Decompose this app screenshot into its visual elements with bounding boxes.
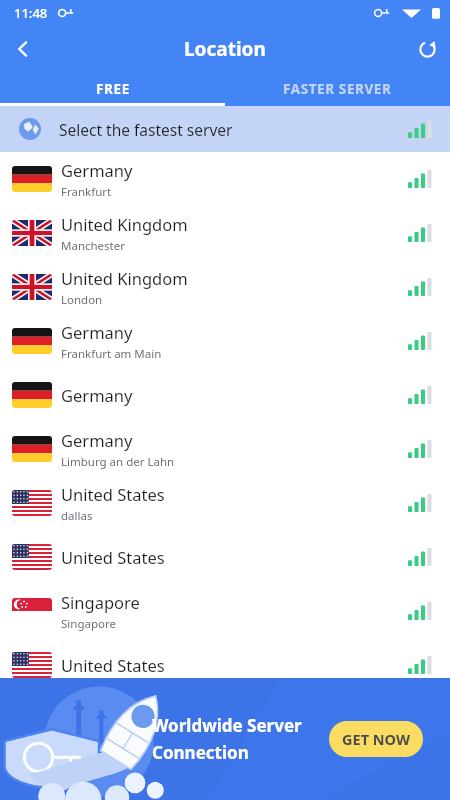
staticText: Connection: [152, 741, 249, 764]
staticText: Frankfurt am Main: [61, 346, 162, 362]
staticText: Germany: [61, 159, 133, 181]
staticText: Germany: [61, 429, 133, 451]
staticText: Singapore: [61, 591, 140, 613]
button[interactable]: Worldwide Server: [0, 678, 450, 800]
staticText: dallas: [61, 508, 93, 524]
staticText: 11:48: [14, 4, 48, 22]
staticText: FASTER SERVER: [283, 80, 392, 98]
staticText: London: [61, 292, 103, 308]
staticText: United Kingdom: [61, 213, 188, 235]
staticText: United Kingdom: [61, 267, 188, 289]
button[interactable]: GET NOW: [329, 721, 423, 757]
staticText: United States: [61, 654, 165, 676]
button[interactable]: Germany: [0, 368, 450, 422]
button[interactable]: United States: [0, 638, 450, 692]
button[interactable]: Refresh: [404, 26, 450, 72]
button[interactable]: United States: [0, 530, 450, 584]
button[interactable]: FREE: [0, 72, 225, 106]
staticText: Germany: [61, 321, 133, 343]
staticText: Select the fastest server: [59, 119, 233, 140]
button[interactable]: Select the fastest server: [0, 106, 450, 152]
staticText: Germany: [61, 384, 133, 406]
staticText: United States: [61, 483, 165, 505]
staticText: Frankfurt: [61, 184, 112, 200]
staticText: GET NOW: [342, 729, 410, 749]
button[interactable]: Singapore: [0, 584, 450, 638]
button[interactable]: United Kingdom: [0, 260, 450, 314]
button[interactable]: United Kingdom: [0, 206, 450, 260]
staticText: FREE: [96, 80, 130, 98]
button[interactable]: Germany: [0, 152, 450, 206]
button[interactable]: FASTER SERVER: [225, 72, 450, 106]
staticText: Singapore: [61, 616, 116, 632]
staticText: United States: [61, 546, 165, 568]
staticText: Manchester: [61, 238, 125, 254]
staticText: Limburg an der Lahn: [61, 454, 175, 470]
staticText: Worldwide Server: [152, 714, 302, 737]
button[interactable]: Germany: [0, 314, 450, 368]
button[interactable]: Back: [0, 26, 46, 72]
button[interactable]: United States: [0, 476, 450, 530]
staticText: Location: [184, 36, 266, 62]
button[interactable]: Germany: [0, 422, 450, 476]
